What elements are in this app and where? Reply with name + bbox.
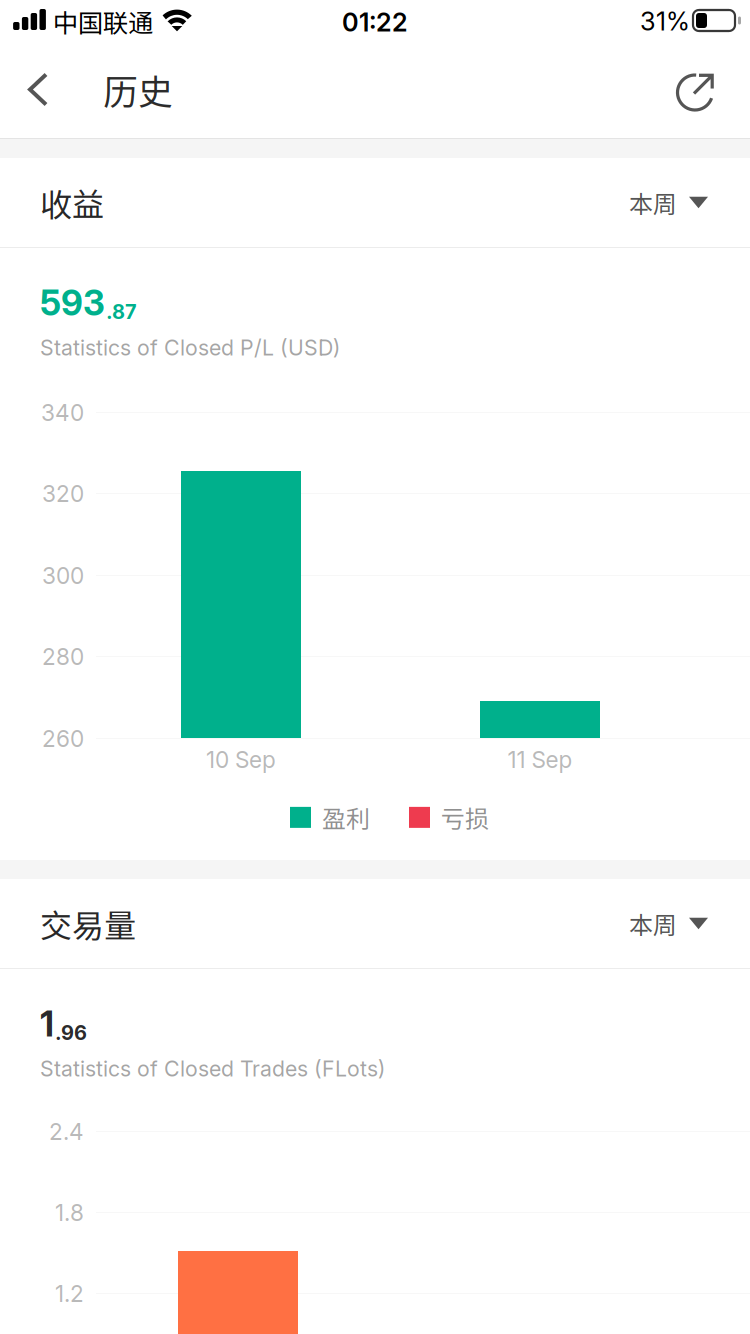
staticText: 01:22 bbox=[342, 7, 408, 38]
staticText: 340 bbox=[41, 399, 84, 426]
staticText: Statistics of Closed Trades (FLots) bbox=[40, 1056, 386, 1082]
staticText: 收益 bbox=[40, 179, 104, 226]
staticText: .96 bbox=[55, 1021, 87, 1045]
staticText: 交易量 bbox=[40, 900, 136, 947]
staticText: 10 Sep bbox=[206, 746, 276, 773]
staticText: 盈利 bbox=[322, 800, 370, 835]
staticText: 亏损 bbox=[441, 800, 489, 835]
staticText: 280 bbox=[42, 643, 84, 670]
staticText: 中国联通 bbox=[53, 3, 153, 40]
staticText: 本周 bbox=[629, 906, 677, 941]
staticText: 260 bbox=[42, 725, 84, 752]
staticText: 31% bbox=[640, 6, 690, 37]
staticText: 593 bbox=[40, 282, 105, 324]
staticText: 1.2 bbox=[55, 1280, 84, 1307]
staticText: 1 bbox=[40, 1003, 54, 1045]
button[interactable]: 本周 bbox=[599, 163, 708, 242]
staticText: 本周 bbox=[629, 185, 677, 220]
button[interactable]: Share bbox=[676, 41, 750, 138]
staticText: 2.4 bbox=[49, 1118, 84, 1145]
staticText: 320 bbox=[42, 480, 84, 507]
staticText: 11 Sep bbox=[507, 746, 572, 773]
button[interactable]: 本周 bbox=[599, 884, 708, 963]
staticText: .87 bbox=[106, 300, 137, 324]
staticText: Statistics of Closed P/L (USD) bbox=[40, 335, 341, 361]
staticText: 300 bbox=[42, 562, 84, 589]
button[interactable]: Back bbox=[0, 41, 68, 138]
staticText: 历史 bbox=[103, 64, 173, 115]
staticText: 1.8 bbox=[55, 1199, 84, 1226]
